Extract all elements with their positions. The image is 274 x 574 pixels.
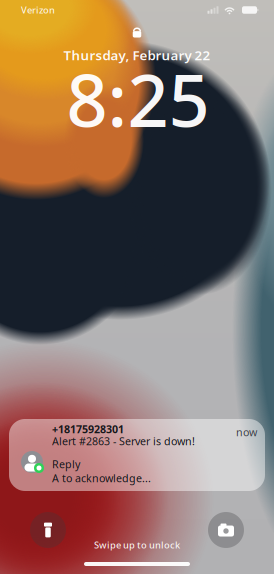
staticText: now bbox=[236, 425, 257, 439]
button[interactable]: Flashlight bbox=[30, 512, 66, 548]
staticText: +18175928301 bbox=[52, 422, 124, 436]
staticText: A to acknowledge... bbox=[52, 471, 151, 485]
button[interactable]: Camera bbox=[208, 512, 244, 548]
staticText: Thursday, February 22 bbox=[63, 46, 210, 64]
staticText: Verizon bbox=[21, 4, 55, 16]
staticText: 8:25 bbox=[66, 51, 209, 147]
button[interactable]: +18175928301 bbox=[9, 419, 265, 491]
staticText: Swipe up to unlock bbox=[94, 539, 180, 551]
staticText: Reply bbox=[52, 457, 80, 471]
staticText: Alert #2863 - Server is down! bbox=[52, 434, 195, 448]
